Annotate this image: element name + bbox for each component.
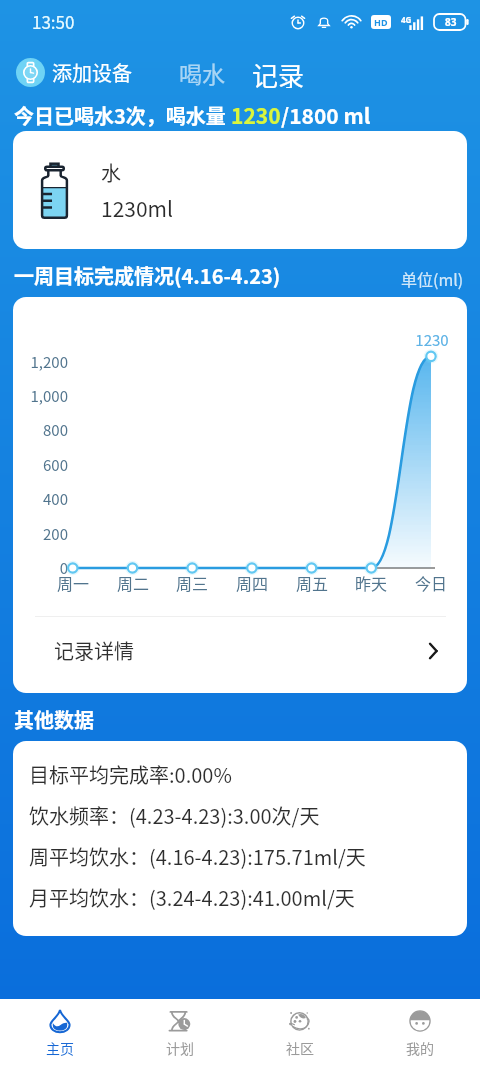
staticText: 昨天 (348, 571, 394, 594)
staticText: 0 (13, 557, 68, 579)
staticText: 周平均饮水：(4.16-4.23):175.71ml/天 (29, 842, 366, 871)
staticText: 记录详情 (54, 636, 134, 665)
staticText: 水 (101, 158, 121, 187)
staticText: 400 (13, 488, 68, 510)
staticText: 今日 (408, 571, 454, 594)
other: Alarm (290, 14, 306, 30)
staticText: 饮水频率：(4.23-4.23):3.00次/天 (29, 801, 320, 830)
staticText: 计划 (166, 1038, 194, 1058)
button[interactable]: 我的 (360, 999, 480, 1067)
other: 4G signal (401, 14, 424, 30)
staticText: 社区 (286, 1038, 314, 1058)
staticText: 喝水 (179, 56, 225, 88)
staticText: 1230ml (101, 193, 174, 223)
button[interactable]: 计划 (120, 999, 240, 1067)
staticText: 600 (13, 454, 68, 476)
staticText: 单位(ml) (401, 267, 464, 290)
staticText: 周二 (110, 571, 156, 594)
staticText: 13:50 (32, 9, 75, 34)
staticText: /1800 ml (281, 100, 371, 130)
staticText: 主页 (46, 1038, 74, 1058)
other: Wi-Fi (342, 12, 361, 31)
staticText: 4G (401, 14, 412, 25)
button[interactable]: 喝水 (170, 50, 234, 94)
staticText: 周一 (50, 571, 96, 594)
staticText: 记录 (252, 56, 305, 88)
staticText: 目标平均完成率:0.00% (29, 760, 232, 789)
staticText: 1,200 (13, 351, 68, 373)
staticText: 800 (13, 419, 68, 441)
staticText: 月平均饮水：(3.24-4.23):41.00ml/天 (29, 883, 355, 912)
other: Notifications muted (316, 14, 332, 30)
button[interactable]: 水 (13, 131, 467, 249)
staticText: 一周目标完成情况(4.16-4.23) (14, 261, 281, 290)
button[interactable]: 记录详情 (13, 617, 467, 693)
staticText: 周四 (229, 571, 275, 594)
staticText: 周三 (169, 571, 215, 594)
staticText: 1230 (231, 100, 281, 130)
staticText: 今日已喝水3次，喝水量 (14, 101, 231, 130)
staticText: 其他数据 (14, 705, 94, 734)
staticText: 1230 (402, 329, 462, 351)
button[interactable]: 社区 (240, 999, 360, 1067)
staticText: 200 (13, 523, 68, 545)
button[interactable]: 添加设备 (0, 54, 140, 91)
button[interactable]: 记录 (243, 50, 314, 94)
staticText: 添加设备 (52, 58, 132, 87)
button[interactable]: 主页 (0, 999, 120, 1067)
staticText: 周五 (289, 571, 335, 594)
staticText: 1,000 (13, 385, 68, 407)
staticText: HD (374, 16, 388, 28)
staticText: 83 (445, 15, 457, 29)
staticText: 我的 (406, 1038, 434, 1058)
